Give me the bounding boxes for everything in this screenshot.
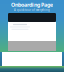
staticText: Onboarding Page (11, 1, 53, 8)
staticText: A quick tour of everything (14, 8, 50, 12)
